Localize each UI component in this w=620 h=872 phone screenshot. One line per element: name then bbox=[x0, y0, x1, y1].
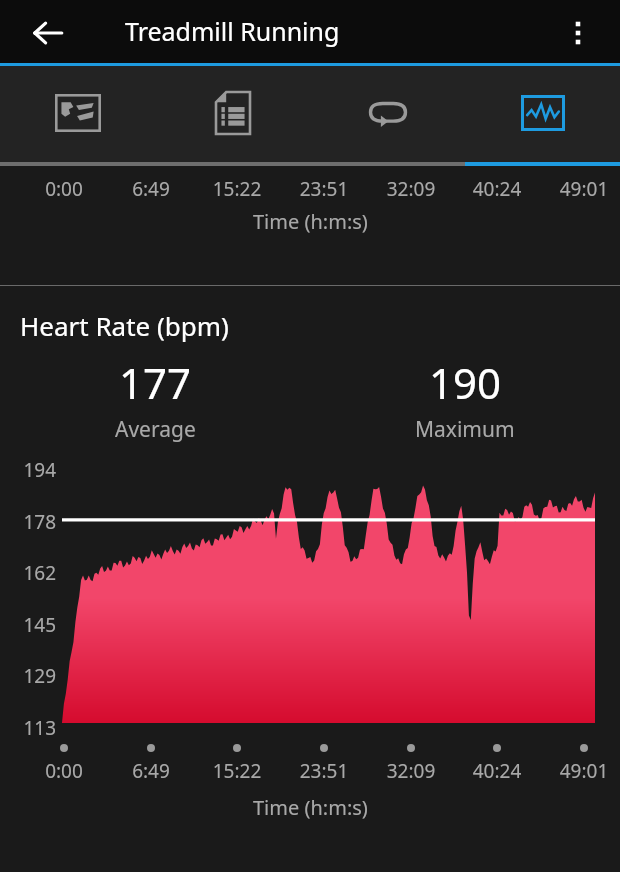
staticText: 0:00 bbox=[20, 758, 108, 784]
staticText: 0:00 bbox=[20, 176, 108, 202]
staticText: Average bbox=[115, 415, 196, 444]
staticText: Time (h:m:s) bbox=[253, 208, 368, 235]
staticText: 145 bbox=[0, 612, 56, 638]
staticText: 23:51 bbox=[280, 176, 368, 202]
button[interactable]: Charts bbox=[465, 66, 620, 166]
staticText: Treadmill Running bbox=[125, 14, 340, 48]
staticText: Maximum bbox=[415, 415, 515, 444]
staticText: 40:24 bbox=[453, 758, 541, 784]
staticText: 194 bbox=[0, 457, 56, 483]
staticText: 6:49 bbox=[107, 758, 195, 784]
staticText: 113 bbox=[0, 715, 56, 741]
staticText: 177 bbox=[119, 354, 192, 411]
staticText: Time (h:m:s) bbox=[253, 794, 368, 821]
button[interactable]: Map bbox=[0, 66, 155, 166]
staticText: 129 bbox=[0, 663, 56, 689]
staticText: 15:22 bbox=[193, 176, 281, 202]
button[interactable]: More options bbox=[550, 5, 606, 61]
staticText: 49:01 bbox=[540, 176, 620, 202]
staticText: 23:51 bbox=[280, 758, 368, 784]
staticText: 6:49 bbox=[107, 176, 195, 202]
staticText: 178 bbox=[0, 509, 56, 535]
staticText: 15:22 bbox=[193, 758, 281, 784]
staticText: 162 bbox=[0, 560, 56, 586]
button[interactable]: Details bbox=[155, 66, 310, 166]
staticText: 49:01 bbox=[540, 758, 620, 784]
staticText: 32:09 bbox=[367, 758, 455, 784]
button[interactable]: Back bbox=[18, 3, 78, 63]
staticText: 40:24 bbox=[453, 176, 541, 202]
staticText: 190 bbox=[429, 354, 502, 411]
button[interactable]: Laps bbox=[310, 66, 465, 166]
staticText: Heart Rate (bpm) bbox=[20, 308, 229, 343]
staticText: 32:09 bbox=[367, 176, 455, 202]
